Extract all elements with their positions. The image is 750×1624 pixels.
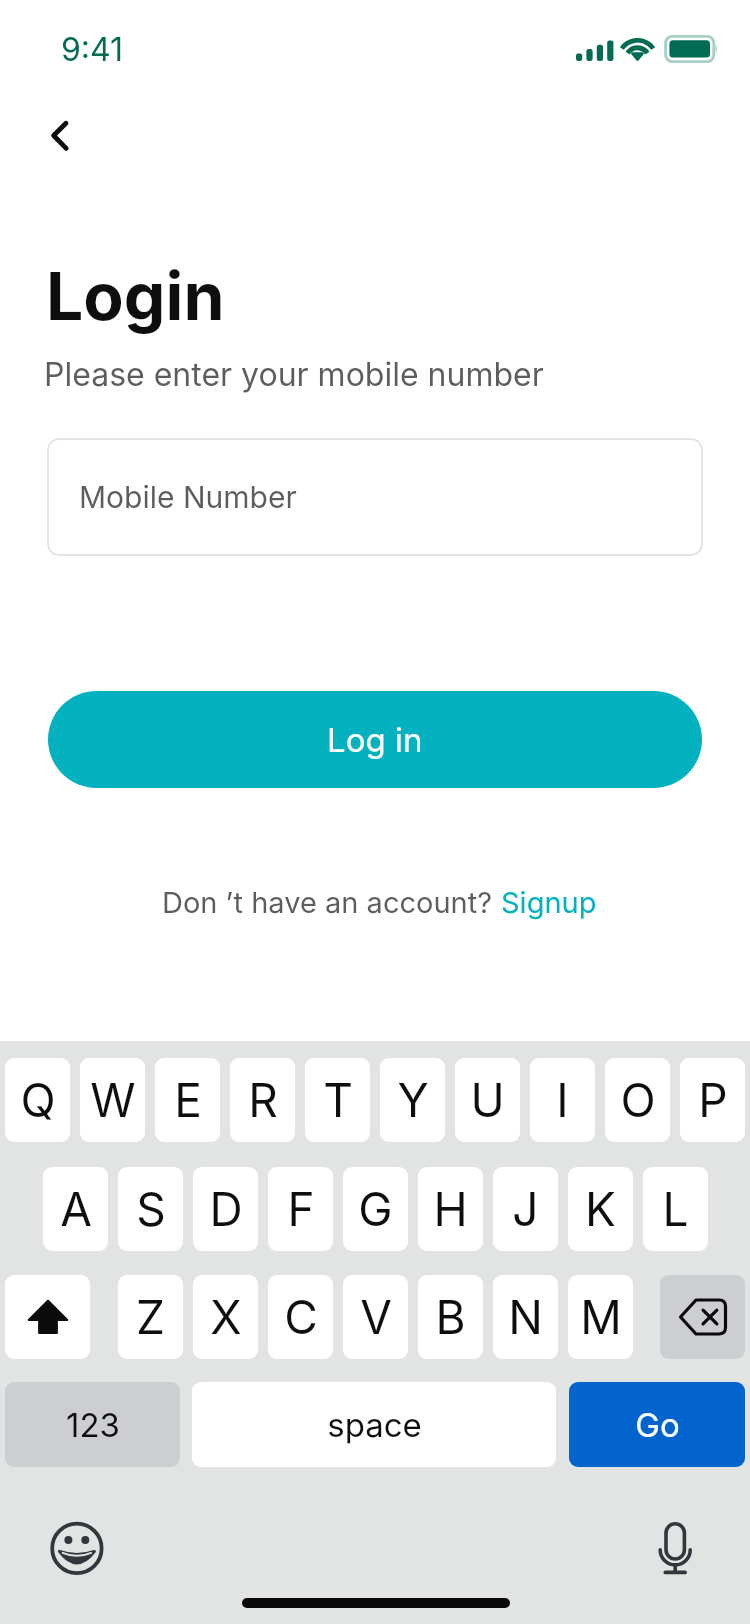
staticText: D xyxy=(209,1181,243,1237)
button[interactable]: N xyxy=(493,1275,558,1359)
button[interactable]: Shift xyxy=(5,1275,90,1359)
button[interactable]: S xyxy=(118,1167,183,1251)
button[interactable]: Backspace xyxy=(660,1275,745,1359)
button[interactable]: O xyxy=(605,1058,670,1142)
staticText: Signup xyxy=(501,885,597,920)
button[interactable]: 123 xyxy=(5,1382,180,1467)
staticText: 9:41 xyxy=(61,30,124,69)
staticText: Don ’t have an account? xyxy=(162,885,501,920)
staticText: Go xyxy=(635,1405,680,1445)
button[interactable]: C xyxy=(268,1275,333,1359)
button[interactable]: P xyxy=(680,1058,745,1142)
staticText: N xyxy=(508,1289,543,1345)
staticText: Please enter your mobile number xyxy=(44,355,544,394)
button[interactable]: T xyxy=(305,1058,370,1142)
staticText: Z xyxy=(136,1289,165,1345)
staticText: space xyxy=(327,1405,422,1445)
staticText: J xyxy=(512,1181,539,1237)
staticText: Login xyxy=(46,256,225,336)
staticText: K xyxy=(585,1181,616,1237)
button[interactable]: space xyxy=(192,1382,556,1467)
staticText: F xyxy=(287,1181,315,1237)
button[interactable]: D xyxy=(193,1167,258,1251)
staticText: W xyxy=(90,1072,136,1128)
staticText: U xyxy=(470,1072,505,1128)
button[interactable]: A xyxy=(43,1167,108,1251)
staticText: B xyxy=(435,1289,466,1345)
button[interactable]: Go xyxy=(569,1382,745,1467)
staticText: H xyxy=(433,1181,468,1237)
staticText: Y xyxy=(397,1072,429,1128)
button[interactable]: J xyxy=(493,1167,558,1251)
staticText: C xyxy=(284,1289,318,1345)
staticText: O xyxy=(620,1072,656,1128)
staticText: T xyxy=(323,1072,353,1128)
staticText: M xyxy=(580,1289,622,1345)
button[interactable]: Z xyxy=(118,1275,183,1359)
staticText: G xyxy=(358,1181,393,1237)
button[interactable]: Mobile Number xyxy=(47,438,703,556)
button[interactable]: V xyxy=(343,1275,408,1359)
button[interactable]: Dictate xyxy=(645,1514,707,1582)
button[interactable]: E xyxy=(155,1058,220,1142)
button[interactable]: L xyxy=(643,1167,708,1251)
button[interactable]: R xyxy=(230,1058,295,1142)
button[interactable]: F xyxy=(268,1167,333,1251)
button[interactable]: U xyxy=(455,1058,520,1142)
button[interactable]: Y xyxy=(380,1058,445,1142)
staticText: A xyxy=(60,1181,92,1237)
button[interactable]: I xyxy=(530,1058,595,1142)
staticText: Log in xyxy=(327,720,423,760)
staticText: X xyxy=(210,1289,242,1345)
button[interactable]: Q xyxy=(5,1058,70,1142)
button[interactable]: X xyxy=(193,1275,258,1359)
staticText: S xyxy=(136,1181,166,1237)
staticText: P xyxy=(698,1072,728,1128)
staticText: I xyxy=(556,1072,569,1128)
button[interactable]: W xyxy=(80,1058,145,1142)
staticText: V xyxy=(360,1289,392,1345)
button[interactable]: K xyxy=(568,1167,633,1251)
button[interactable]: H xyxy=(418,1167,483,1251)
staticText: L xyxy=(662,1181,689,1237)
staticText: Q xyxy=(20,1072,56,1128)
button[interactable]: G xyxy=(343,1167,408,1251)
button[interactable]: B xyxy=(418,1275,483,1359)
button[interactable]: Emoji keyboard xyxy=(44,1516,108,1580)
button[interactable]: Log in xyxy=(48,691,702,788)
staticText: 123 xyxy=(66,1405,120,1445)
button[interactable]: M xyxy=(568,1275,633,1359)
button[interactable]: Signup xyxy=(501,885,597,920)
staticText: E xyxy=(174,1072,202,1128)
staticText: Mobile Number xyxy=(79,479,297,515)
staticText: R xyxy=(248,1072,278,1128)
button[interactable]: Back xyxy=(22,106,84,168)
